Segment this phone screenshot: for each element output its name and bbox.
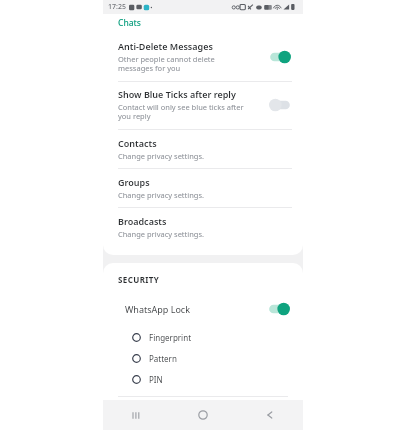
staticText: Change privacy settings. <box>118 190 205 200</box>
button[interactable]: Toggle on <box>268 50 292 64</box>
button[interactable]: Toggle off <box>268 98 292 112</box>
button[interactable]: Pattern <box>103 348 303 369</box>
staticText: Groups <box>118 176 150 188</box>
button[interactable]: WhatsApp Lock <box>103 298 303 320</box>
staticText: Chats <box>118 17 141 29</box>
staticText: Other people cannot delete messages for … <box>118 54 215 74</box>
button[interactable]: Broadcasts <box>103 208 303 246</box>
button[interactable]: Show Blue Ticks after reply <box>103 82 303 129</box>
staticText: Change privacy settings. <box>118 229 205 239</box>
button[interactable]: Home <box>169 400 236 430</box>
staticText: Contacts <box>118 137 157 149</box>
staticText: Contact will only see blue ticks after y… <box>118 102 244 122</box>
button[interactable]: PIN <box>103 369 303 390</box>
button[interactable]: Groups <box>103 169 303 207</box>
staticText: Change privacy settings. <box>118 151 205 161</box>
staticText: Pattern <box>149 353 177 364</box>
staticText: PIN <box>149 374 163 385</box>
staticText: WhatsApp Lock <box>125 303 267 315</box>
staticText: Broadcasts <box>118 215 167 227</box>
staticText: Fingerprint <box>149 332 192 343</box>
staticText: 17:25 <box>108 2 126 12</box>
button[interactable]: Fingerprint <box>103 327 303 348</box>
button[interactable]: Recent apps <box>103 400 169 430</box>
staticText: Show Blue Ticks after reply <box>118 88 236 100</box>
button[interactable]: Toggle on <box>267 302 291 316</box>
button[interactable]: Contacts <box>103 130 303 168</box>
button[interactable]: Back <box>236 400 303 430</box>
button[interactable]: Anti-Delete Messages <box>103 34 303 81</box>
staticText: SECURITY <box>118 274 160 285</box>
staticText: Anti-Delete Messages <box>118 40 213 52</box>
